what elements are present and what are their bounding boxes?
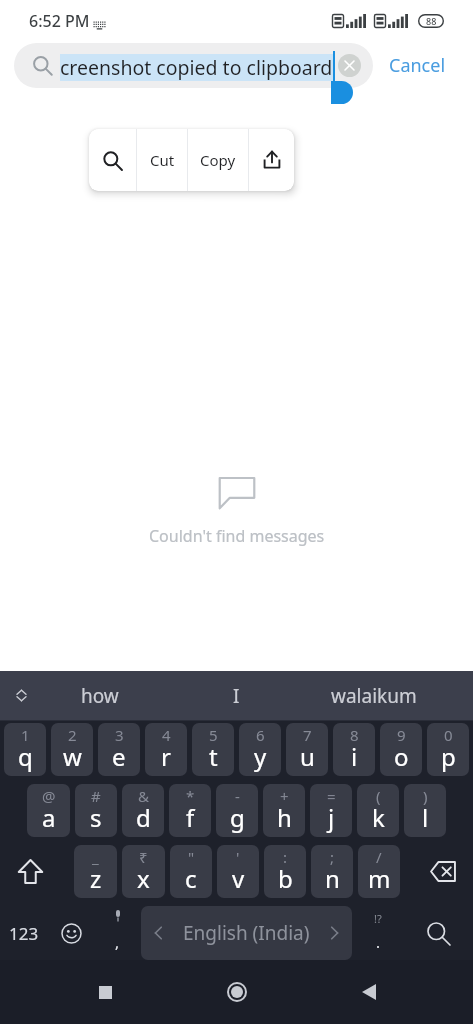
button[interactable]: 9 xyxy=(380,723,422,776)
staticText: Copy xyxy=(200,150,236,170)
staticText: : xyxy=(283,847,288,867)
button[interactable]: + xyxy=(263,784,305,837)
button[interactable]: ; xyxy=(311,845,353,898)
button[interactable]: 0 xyxy=(427,723,469,776)
staticText: x xyxy=(137,862,150,895)
staticText: Couldn't find messages xyxy=(149,525,325,547)
button[interactable]: Voice input and comma xyxy=(94,906,141,960)
button[interactable]: ₹ xyxy=(122,845,165,898)
other: Expand suggestions xyxy=(14,688,29,703)
staticText: " xyxy=(188,847,195,867)
button[interactable]: 7 xyxy=(286,723,328,776)
staticText: @ xyxy=(42,786,56,806)
staticText: ( xyxy=(376,786,381,806)
button[interactable]: 6 xyxy=(239,723,281,776)
button[interactable]: Search xyxy=(14,43,373,88)
button[interactable]: & xyxy=(122,784,164,837)
button[interactable]: 8 xyxy=(333,723,375,776)
button[interactable]: * xyxy=(169,784,211,837)
button[interactable]: Backspace xyxy=(404,845,473,898)
button[interactable]: Recents xyxy=(77,964,133,1020)
staticText: creenshot copied to clipboard xyxy=(60,54,333,81)
staticText: - xyxy=(235,786,240,806)
button[interactable]: Cut xyxy=(137,129,187,191)
staticText: u xyxy=(300,740,315,773)
staticText: y xyxy=(254,740,267,773)
button[interactable]: Symbols and period xyxy=(352,906,404,960)
staticText: walaikum xyxy=(331,683,417,709)
button[interactable]: Search xyxy=(89,129,136,191)
staticText: r xyxy=(161,740,171,773)
staticText: z xyxy=(90,862,102,895)
staticText: 6 xyxy=(256,725,265,745)
staticText: Cut xyxy=(150,150,175,170)
staticText: 8 xyxy=(350,725,359,745)
staticText: 88 xyxy=(426,15,437,27)
staticText: ' xyxy=(236,847,240,867)
button[interactable]: Copy xyxy=(188,129,248,191)
button[interactable]: Clear search xyxy=(338,54,361,77)
button[interactable]: @ xyxy=(27,784,70,837)
staticText: * xyxy=(186,786,195,806)
staticText: 123 xyxy=(9,922,39,945)
staticText: English (India) xyxy=(183,920,310,946)
staticText: e xyxy=(112,740,126,773)
button[interactable]: _ xyxy=(74,845,117,898)
staticText: f xyxy=(186,801,195,834)
staticText: / xyxy=(376,847,382,867)
button[interactable]: 123 xyxy=(0,906,48,960)
staticText: ; xyxy=(330,847,335,867)
staticText: m xyxy=(368,862,391,895)
button[interactable]: / xyxy=(358,845,400,898)
staticText: w xyxy=(63,740,82,773)
staticText: I xyxy=(233,683,240,709)
button[interactable]: = xyxy=(310,784,352,837)
button[interactable]: ' xyxy=(217,845,259,898)
staticText: & xyxy=(138,786,149,806)
button[interactable]: Search xyxy=(404,906,473,960)
staticText: ₹ xyxy=(139,847,148,867)
staticText: o xyxy=(394,740,409,773)
button[interactable]: Back xyxy=(341,964,397,1020)
other: Search xyxy=(102,150,123,171)
other: Share xyxy=(262,150,282,170)
button[interactable]: 2 xyxy=(51,723,93,776)
staticText: how xyxy=(81,683,119,709)
staticText: v xyxy=(232,862,245,895)
button[interactable]: how xyxy=(31,671,168,720)
staticText: q xyxy=(18,740,33,773)
button[interactable]: I xyxy=(168,671,305,720)
staticText: !? xyxy=(374,911,382,926)
button[interactable]: Share xyxy=(249,129,294,191)
button[interactable]: ) xyxy=(404,784,446,837)
staticText: n xyxy=(325,862,340,895)
button[interactable]: # xyxy=(75,784,117,837)
button[interactable]: Home xyxy=(209,964,265,1020)
staticText: l xyxy=(422,801,429,834)
staticText: 1 xyxy=(21,725,30,745)
button[interactable]: Cancel xyxy=(389,43,446,88)
button[interactable]: walaikum xyxy=(305,671,442,720)
staticText: 0 xyxy=(444,725,453,745)
staticText: 6:52 PM xyxy=(29,10,90,32)
button[interactable]: 5 xyxy=(192,723,234,776)
staticText: # xyxy=(91,786,101,806)
staticText: ) xyxy=(423,786,428,806)
button[interactable]: Shift xyxy=(0,845,73,898)
button[interactable]: " xyxy=(170,845,212,898)
staticText: d xyxy=(136,801,151,834)
button[interactable]: 3 xyxy=(98,723,140,776)
staticText: a xyxy=(42,801,56,834)
button[interactable]: - xyxy=(216,784,258,837)
button[interactable]: : xyxy=(264,845,306,898)
button[interactable]: 1 xyxy=(4,723,46,776)
staticText: 3 xyxy=(115,725,124,745)
staticText: 4 xyxy=(162,725,171,745)
staticText: h xyxy=(277,801,292,834)
staticText: 5 xyxy=(209,725,218,745)
button[interactable]: English (India) xyxy=(141,906,352,960)
button[interactable]: ( xyxy=(357,784,399,837)
button[interactable]: 4 xyxy=(145,723,187,776)
staticText: 2 xyxy=(68,725,77,745)
button[interactable]: Emoji xyxy=(48,906,94,960)
